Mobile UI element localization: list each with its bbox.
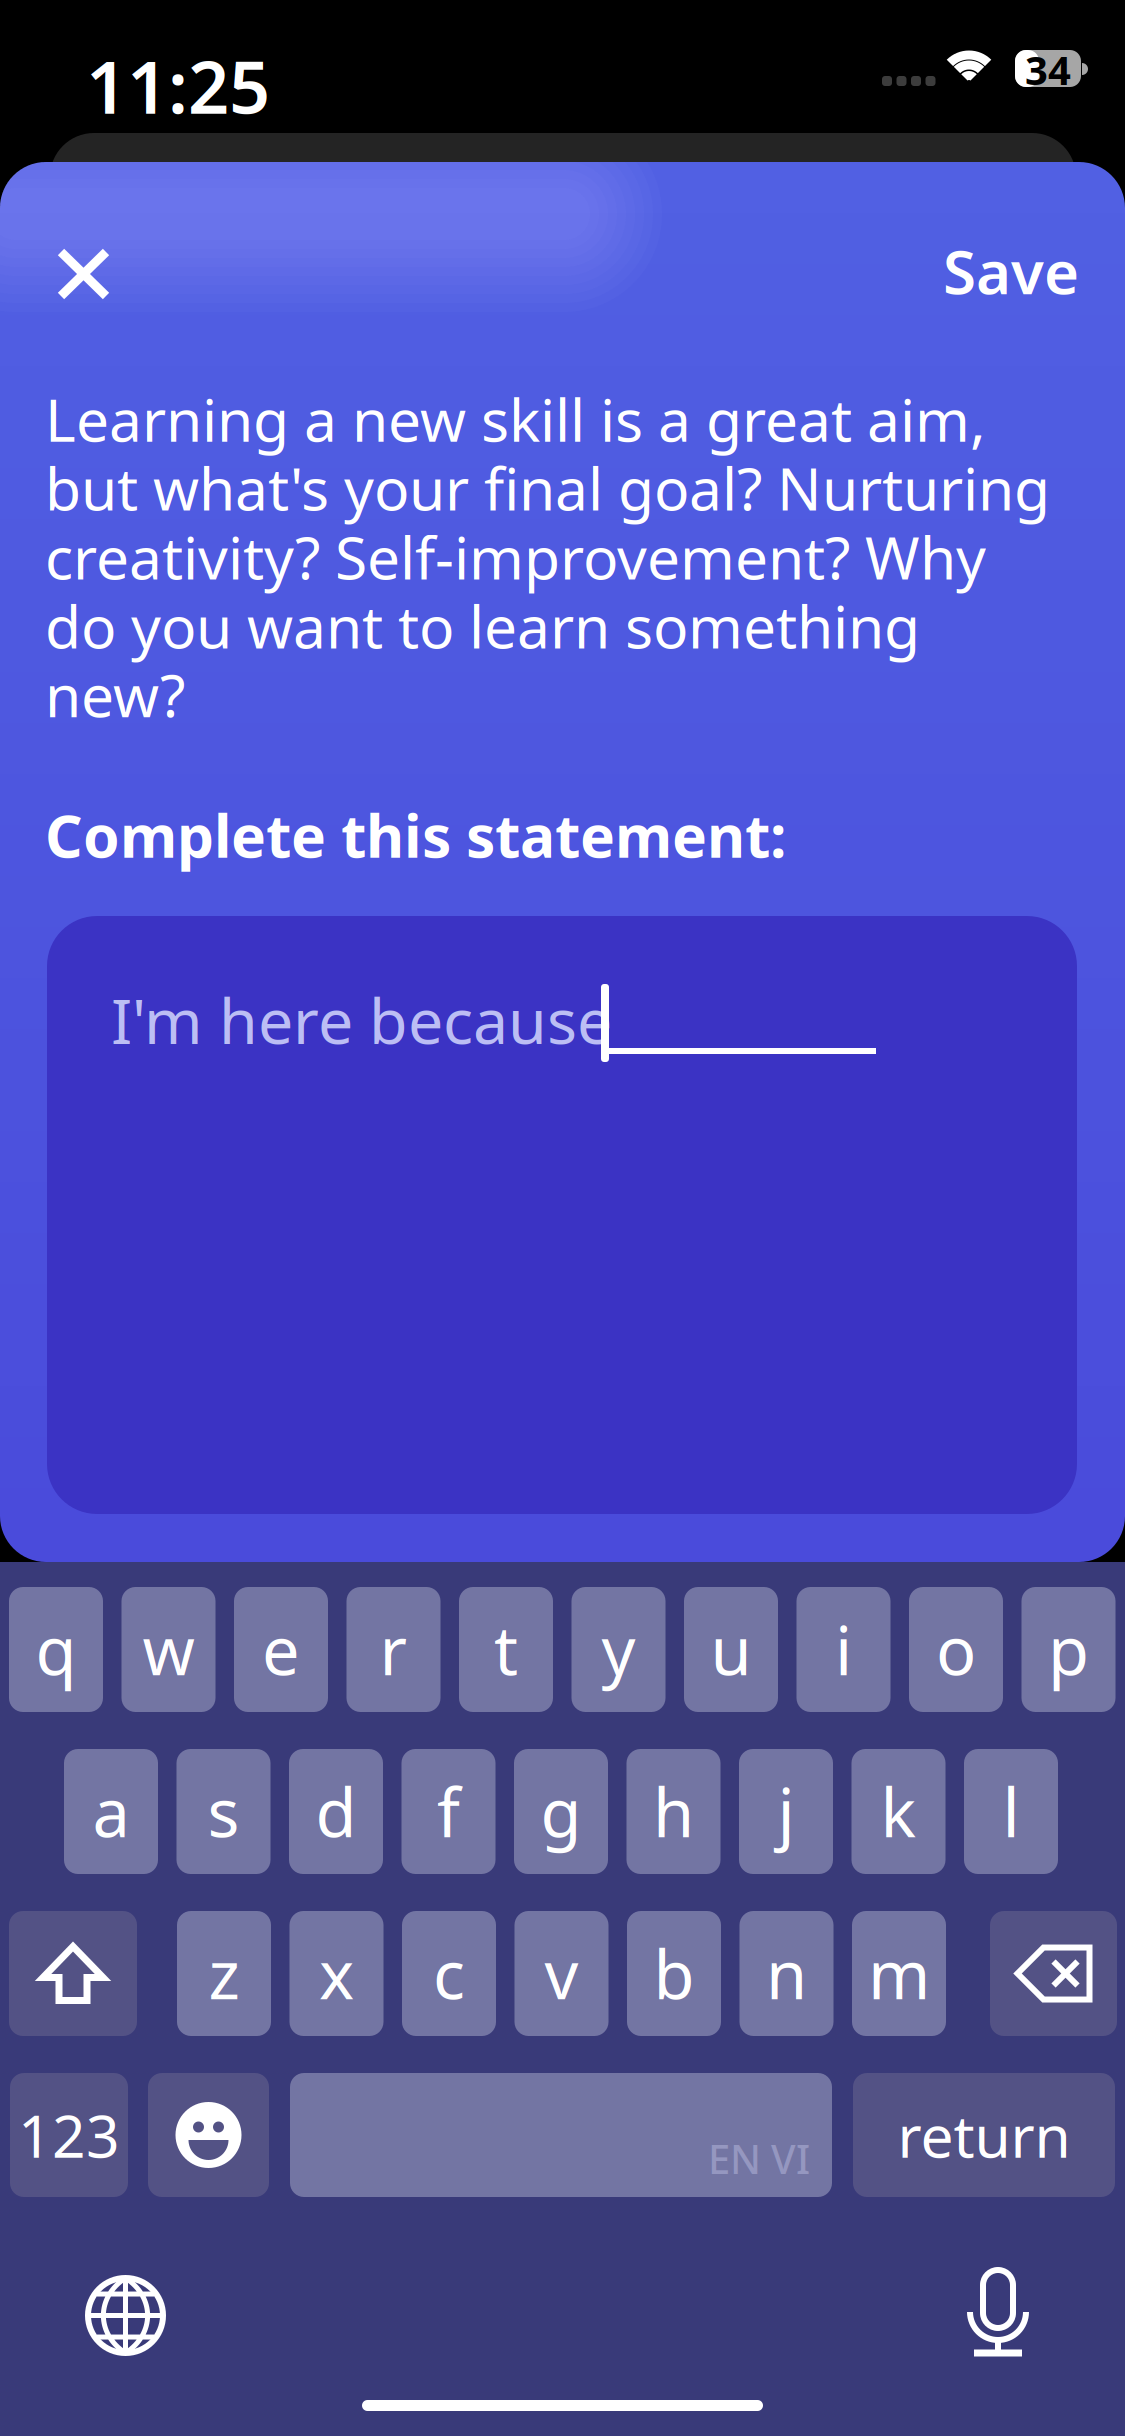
button[interactable]: l bbox=[964, 1749, 1058, 1874]
button[interactable]: e bbox=[234, 1587, 328, 1712]
button[interactable]: Emoji bbox=[148, 2073, 269, 2197]
staticText: y bbox=[601, 1605, 635, 1694]
button[interactable]: j bbox=[739, 1749, 833, 1874]
button[interactable]: v bbox=[514, 1911, 608, 2036]
button[interactable]: p bbox=[1021, 1587, 1115, 1712]
button[interactable]: t bbox=[459, 1587, 553, 1712]
staticText: u bbox=[710, 1605, 751, 1694]
staticText: EN VI bbox=[708, 2132, 810, 2185]
staticText: s bbox=[207, 1767, 239, 1856]
staticText: Learning a new skill is a great aim, but… bbox=[45, 380, 1050, 733]
staticText: I'm here because bbox=[111, 978, 612, 1061]
staticText: a bbox=[92, 1767, 129, 1856]
staticText: c bbox=[433, 1929, 465, 2018]
staticText: g bbox=[540, 1767, 581, 1856]
staticText: Save bbox=[943, 231, 1079, 311]
button[interactable]: w bbox=[121, 1587, 215, 1712]
staticText: v bbox=[544, 1929, 578, 2018]
staticText: p bbox=[1048, 1605, 1089, 1694]
button[interactable]: u bbox=[684, 1587, 778, 1712]
button[interactable]: return bbox=[853, 2073, 1115, 2197]
button[interactable]: i bbox=[796, 1587, 890, 1712]
staticText: q bbox=[35, 1605, 76, 1694]
button[interactable]: Close bbox=[34, 225, 133, 323]
staticText: k bbox=[880, 1767, 916, 1856]
button[interactable]: f bbox=[401, 1749, 495, 1874]
staticText: o bbox=[936, 1605, 976, 1694]
button[interactable]: Dictation bbox=[969, 2268, 1027, 2356]
button[interactable]: c bbox=[402, 1911, 496, 2036]
staticText: m bbox=[868, 1929, 930, 2018]
staticText: r bbox=[379, 1605, 407, 1694]
button[interactable]: z bbox=[177, 1911, 271, 2036]
button[interactable]: b bbox=[627, 1911, 721, 2036]
button[interactable]: h bbox=[626, 1749, 720, 1874]
button[interactable]: Save bbox=[909, 219, 1099, 323]
button[interactable]: y bbox=[571, 1587, 665, 1712]
staticText: d bbox=[315, 1767, 356, 1856]
staticText: i bbox=[835, 1605, 852, 1694]
button[interactable]: Space bbox=[290, 2073, 832, 2197]
button[interactable]: o bbox=[909, 1587, 1003, 1712]
staticText: x bbox=[319, 1929, 354, 2018]
staticText: t bbox=[494, 1605, 518, 1694]
button[interactable]: k bbox=[851, 1749, 945, 1874]
staticText: return bbox=[897, 2096, 1070, 2174]
button[interactable]: 123 bbox=[10, 2073, 128, 2197]
button[interactable]: g bbox=[514, 1749, 608, 1874]
staticText: w bbox=[142, 1605, 194, 1694]
staticText: 11:25 bbox=[86, 38, 270, 134]
button[interactable]: m bbox=[852, 1911, 946, 2036]
button[interactable]: Change keyboard bbox=[85, 2275, 166, 2356]
button[interactable]: Shift bbox=[9, 1911, 137, 2036]
button[interactable]: s bbox=[176, 1749, 270, 1874]
button[interactable]: r bbox=[346, 1587, 440, 1712]
staticText: z bbox=[208, 1929, 239, 2018]
staticText: 123 bbox=[18, 2096, 120, 2174]
button[interactable]: a bbox=[64, 1749, 158, 1874]
button[interactable]: q bbox=[9, 1587, 103, 1712]
staticText: h bbox=[653, 1767, 694, 1856]
staticText: 34 bbox=[1025, 43, 1071, 96]
staticText: e bbox=[262, 1605, 300, 1694]
staticText: f bbox=[437, 1767, 460, 1856]
staticText: b bbox=[653, 1929, 694, 2018]
button[interactable]: n bbox=[739, 1911, 833, 2036]
button[interactable]: d bbox=[289, 1749, 383, 1874]
button[interactable]: x bbox=[289, 1911, 383, 2036]
button[interactable]: Delete bbox=[990, 1911, 1117, 2036]
staticText: Complete this statement: bbox=[45, 796, 786, 874]
staticText: j bbox=[777, 1767, 794, 1856]
staticText: l bbox=[1002, 1767, 1019, 1856]
staticText: n bbox=[766, 1929, 807, 2018]
